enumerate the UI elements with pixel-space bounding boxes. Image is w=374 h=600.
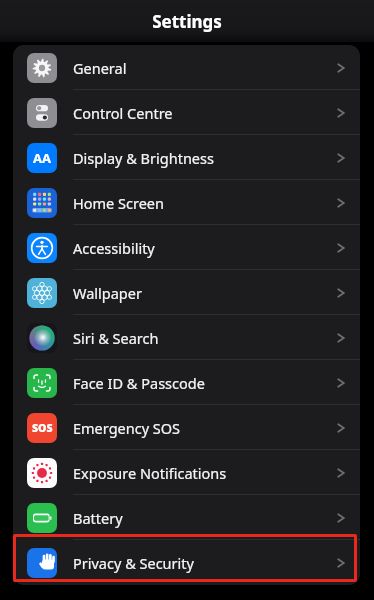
button[interactable]: Siri & Search <box>13 315 360 360</box>
staticText: AA <box>33 149 51 167</box>
staticText: Control Centre <box>73 103 336 123</box>
button[interactable]: AA <box>13 135 360 180</box>
button[interactable]: Privacy & Security <box>13 540 360 585</box>
staticText: Emergency SOS <box>73 418 336 438</box>
staticText: Accessibility <box>73 238 336 258</box>
button[interactable]: Exposure Notifications <box>13 450 360 495</box>
button[interactable]: SOS <box>13 405 360 450</box>
button[interactable]: Control Centre <box>13 90 360 135</box>
staticText: Exposure Notifications <box>73 463 336 483</box>
button[interactable]: Face ID & Passcode <box>13 360 360 405</box>
staticText: Siri & Search <box>73 328 336 348</box>
button[interactable]: Wallpaper <box>13 270 360 315</box>
staticText: Display & Brightness <box>73 148 336 168</box>
button[interactable]: Home Screen <box>13 180 360 225</box>
button[interactable]: Accessibility <box>13 225 360 270</box>
staticText: Settings <box>152 10 222 33</box>
staticText: SOS <box>32 421 53 435</box>
staticText: Privacy & Security <box>73 553 336 573</box>
staticText: Face ID & Passcode <box>73 373 336 393</box>
button[interactable]: Battery <box>13 495 360 540</box>
staticText: Wallpaper <box>73 283 336 303</box>
button[interactable]: General <box>13 45 360 90</box>
staticText: Battery <box>73 508 336 528</box>
staticText: General <box>73 58 336 78</box>
staticText: Home Screen <box>73 193 336 213</box>
other: Privacy & Security highlighted <box>13 534 357 582</box>
